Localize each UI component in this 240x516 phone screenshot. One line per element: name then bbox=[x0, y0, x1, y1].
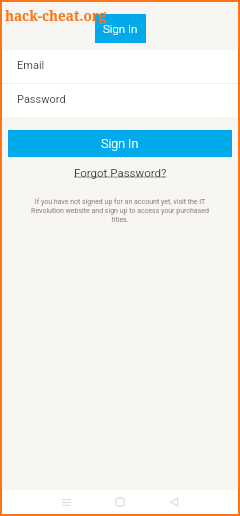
staticText: Sign In bbox=[101, 136, 139, 151]
button[interactable]: Recents bbox=[54, 490, 78, 514]
button[interactable]: Password bbox=[2, 84, 238, 117]
button[interactable]: Sign In bbox=[8, 130, 232, 157]
staticText: If you have not signed up for an account… bbox=[29, 198, 211, 224]
staticText: Password bbox=[17, 93, 66, 106]
button[interactable]: Forgot Password? bbox=[70, 165, 171, 180]
staticText: Email bbox=[17, 59, 45, 72]
button[interactable]: Sign In bbox=[95, 14, 146, 43]
staticText: hack-cheat.org bbox=[5, 7, 107, 25]
button[interactable]: Home bbox=[108, 490, 132, 514]
button[interactable]: Back bbox=[162, 490, 186, 514]
button[interactable]: Email bbox=[2, 50, 238, 83]
staticText: Sign In bbox=[103, 22, 138, 35]
staticText: Forgot Password? bbox=[74, 166, 167, 179]
